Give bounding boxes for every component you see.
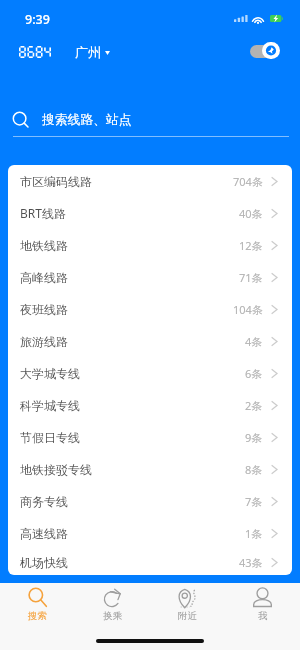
staticText: 6条 — [245, 366, 263, 381]
button[interactable]: 旅游线路 — [8, 325, 292, 357]
button[interactable]: 我 — [225, 583, 300, 623]
staticText: 旅游线路 — [20, 334, 68, 349]
staticText: 广州 — [75, 44, 101, 60]
staticText: 附近 — [178, 610, 197, 622]
staticText: 机场快线 — [20, 555, 68, 570]
staticText: 高峰线路 — [20, 270, 68, 285]
staticText: 科学城专线 — [20, 398, 80, 413]
button[interactable]: 地铁接驳专线 — [8, 453, 292, 485]
staticText: 7条 — [245, 494, 263, 509]
staticText: 夜班线路 — [20, 302, 68, 317]
staticText: 9条 — [245, 430, 263, 445]
button[interactable]: 高峰线路 — [8, 261, 292, 293]
button[interactable]: 市区编码线路 — [8, 165, 292, 197]
staticText: 大学城专线 — [20, 366, 80, 381]
staticText: 9:39 — [25, 11, 50, 28]
button[interactable]: 附近 — [150, 583, 225, 623]
button[interactable]: 广州 — [75, 44, 110, 60]
staticText: 高速线路 — [20, 526, 68, 541]
staticText: 8条 — [245, 462, 263, 477]
button[interactable]: Toggle map view — [250, 42, 280, 59]
button[interactable]: BRT线路 — [8, 197, 292, 229]
staticText: 搜索 — [28, 610, 47, 622]
staticText: 商务专线 — [20, 494, 68, 509]
other: 8684 logo — [19, 46, 51, 58]
button[interactable]: 科学城专线 — [8, 389, 292, 421]
button[interactable]: 搜索 — [0, 583, 75, 623]
staticText: 地铁线路 — [20, 238, 68, 253]
staticText: 43条 — [239, 555, 263, 570]
staticText: 节假日专线 — [20, 430, 80, 445]
button[interactable]: 地铁线路 — [8, 229, 292, 261]
staticText: 换乘 — [103, 610, 122, 622]
button[interactable]: 换乘 — [75, 583, 150, 623]
staticText: BRT线路 — [20, 205, 66, 221]
staticText: 71条 — [239, 270, 263, 285]
staticText: 1条 — [245, 526, 263, 541]
staticText: 12条 — [239, 238, 263, 253]
button[interactable]: 搜索线路、站点 — [0, 101, 300, 138]
staticText: 104条 — [233, 302, 263, 317]
button[interactable]: 商务专线 — [8, 485, 292, 517]
staticText: 地铁接驳专线 — [20, 462, 92, 477]
staticText: 704条 — [233, 174, 263, 189]
staticText: 市区编码线路 — [20, 174, 92, 189]
button[interactable]: 高速线路 — [8, 517, 292, 549]
staticText: 40条 — [239, 206, 263, 221]
button[interactable]: 机场快线 — [8, 549, 292, 575]
staticText: 2条 — [245, 398, 263, 413]
button[interactable]: 节假日专线 — [8, 421, 292, 453]
button[interactable]: 夜班线路 — [8, 293, 292, 325]
staticText: 我 — [258, 610, 268, 622]
staticText: 搜索线路、站点 — [42, 112, 132, 128]
button[interactable]: 大学城专线 — [8, 357, 292, 389]
staticText: 4条 — [245, 334, 263, 349]
